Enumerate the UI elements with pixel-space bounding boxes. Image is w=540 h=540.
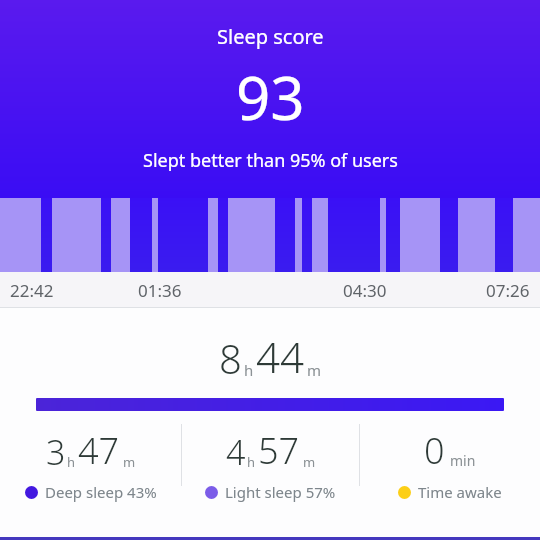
staticText: min bbox=[450, 451, 476, 470]
staticText: Deep sleep 43% bbox=[45, 482, 157, 502]
staticText: 01:36 bbox=[138, 279, 182, 302]
staticText: Sleep score bbox=[217, 23, 324, 50]
button[interactable] bbox=[36, 398, 504, 411]
staticText: h bbox=[247, 453, 256, 471]
button[interactable]: 8 bbox=[0, 308, 540, 392]
staticText: Slept better than 95% of users bbox=[143, 148, 398, 173]
staticText: m bbox=[303, 453, 316, 471]
button[interactable]: 0 bbox=[398, 426, 502, 502]
staticText: 3 bbox=[46, 429, 66, 475]
staticText: 8 bbox=[219, 331, 242, 385]
button[interactable]: 3 bbox=[25, 426, 157, 502]
staticText: 57 bbox=[258, 426, 300, 475]
staticText: 4 bbox=[226, 429, 246, 475]
staticText: 0 bbox=[424, 426, 445, 475]
staticText: 47 bbox=[78, 426, 120, 475]
staticText: Light sleep 57% bbox=[225, 482, 336, 502]
staticText: m bbox=[307, 360, 322, 380]
staticText: m bbox=[123, 453, 136, 471]
staticText: Time awake bbox=[418, 482, 502, 502]
staticText: 22:42 bbox=[10, 279, 54, 302]
staticText: 07:26 bbox=[486, 279, 530, 302]
staticText: h bbox=[244, 360, 254, 380]
staticText: 93 bbox=[236, 56, 305, 138]
staticText: 44 bbox=[256, 328, 304, 385]
staticText: h bbox=[67, 453, 76, 471]
staticText: 04:30 bbox=[343, 279, 387, 302]
button[interactable]: Sleep score bbox=[0, 0, 540, 198]
button[interactable]: Sleep stages chart bbox=[0, 198, 540, 272]
button[interactable]: 4 bbox=[205, 426, 336, 502]
